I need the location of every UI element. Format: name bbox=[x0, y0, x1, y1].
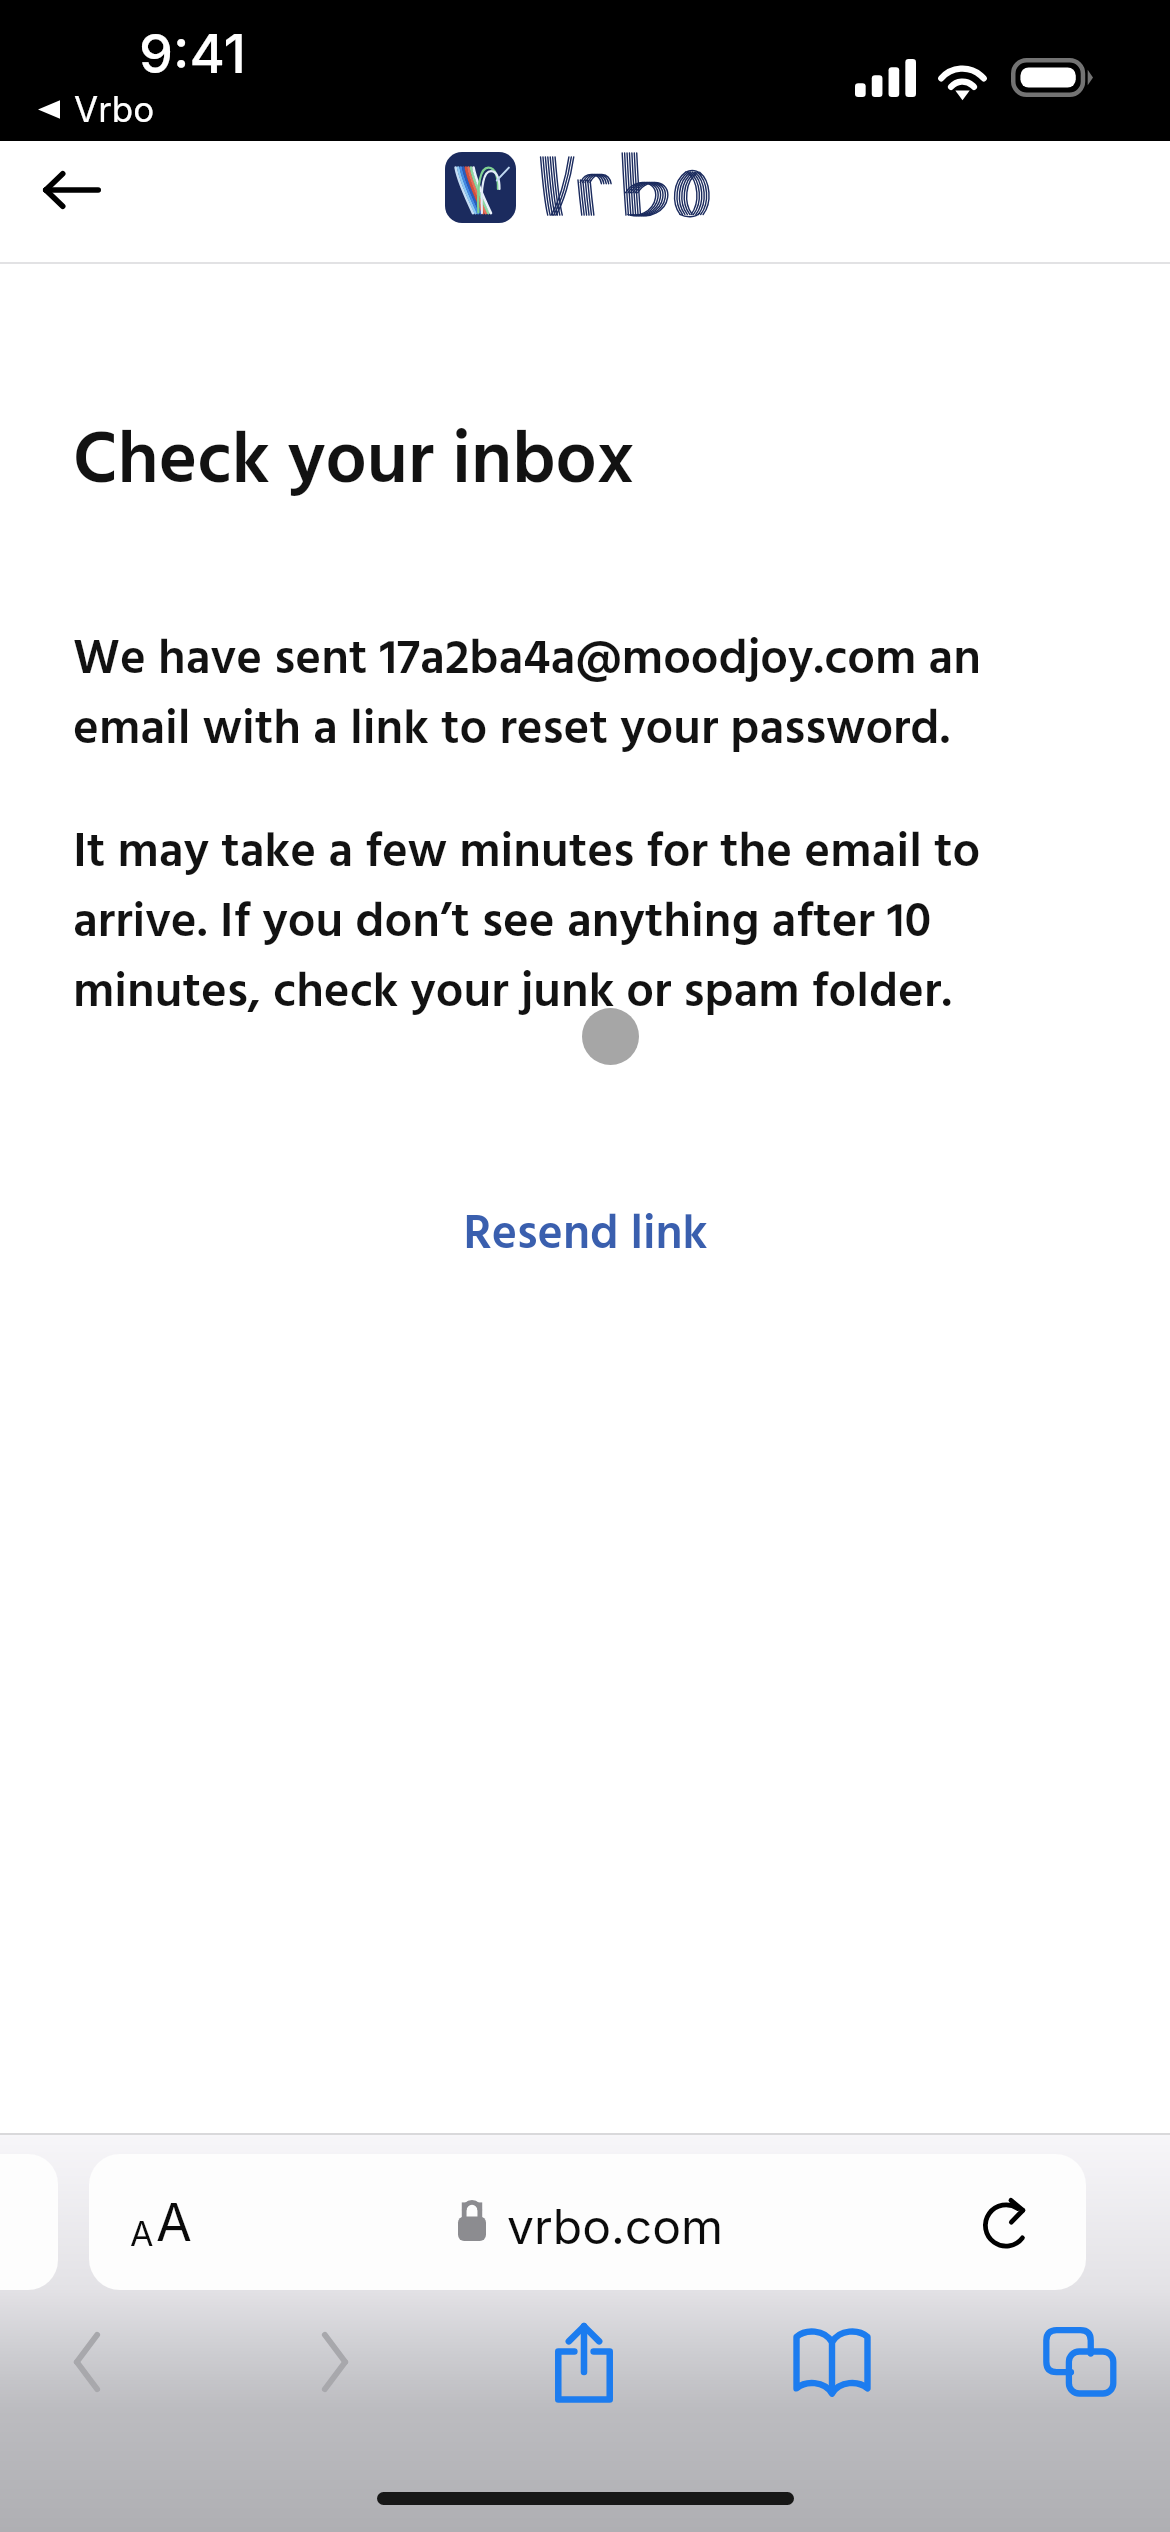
staticText: vrbo.com bbox=[507, 2197, 724, 2255]
button[interactable]: Resend link bbox=[404, 1187, 766, 1283]
button[interactable]: Tabs bbox=[1018, 2292, 1142, 2432]
staticText: Vrbo bbox=[74, 88, 155, 130]
staticText: A bbox=[156, 2191, 192, 2254]
button[interactable]: Bookmarks bbox=[770, 2292, 894, 2432]
button[interactable]: Back to Vrbo bbox=[38, 88, 155, 130]
staticText: We have sent 17a2ba4a@moodjoy.com an ema… bbox=[73, 621, 1033, 770]
button[interactable]: Share bbox=[522, 2292, 646, 2432]
button[interactable]: Text size options bbox=[101, 2154, 221, 2290]
button[interactable]: Forward bbox=[273, 2292, 397, 2432]
button[interactable]: Previous tab bbox=[0, 2154, 58, 2290]
button[interactable]: Back bbox=[19, 129, 125, 250]
button[interactable]: Text size options bbox=[89, 2154, 1086, 2290]
staticText: It may take a few minutes for the email … bbox=[73, 814, 1033, 1033]
staticText: Check your inbox bbox=[73, 405, 634, 522]
staticText: A bbox=[130, 2213, 154, 2254]
staticText: Resend link bbox=[463, 1197, 708, 1274]
button[interactable]: Back bbox=[25, 2292, 149, 2432]
button[interactable]: Reload page bbox=[946, 2154, 1066, 2290]
staticText: 9:41 bbox=[139, 21, 246, 86]
